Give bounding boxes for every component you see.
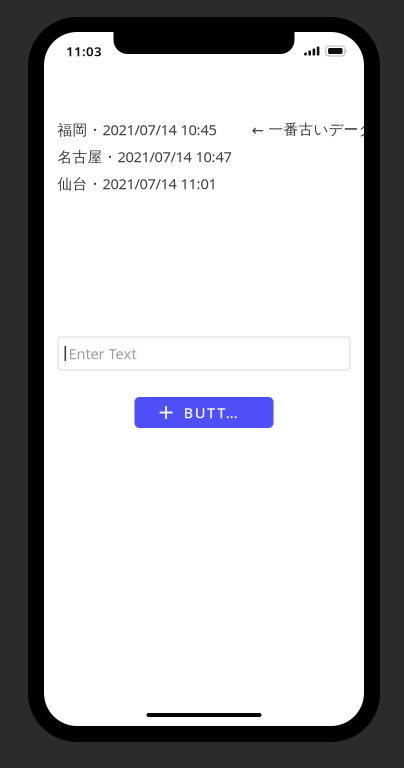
staticText: 名古屋・2021/07/14 10:47: [57, 147, 231, 166]
button[interactable]: Enter Text: [58, 337, 350, 370]
button[interactable]: BUTTON: [134, 397, 273, 428]
staticText: 仙台・2021/07/14 11:01: [57, 174, 216, 193]
staticText: Enter Text: [69, 344, 137, 363]
staticText: ← 一番古いデータ: [251, 120, 373, 138]
staticText: 11:03: [66, 42, 102, 60]
staticText: 福岡・2021/07/14 10:45: [57, 120, 216, 139]
staticText: BUTTON: [184, 403, 247, 422]
